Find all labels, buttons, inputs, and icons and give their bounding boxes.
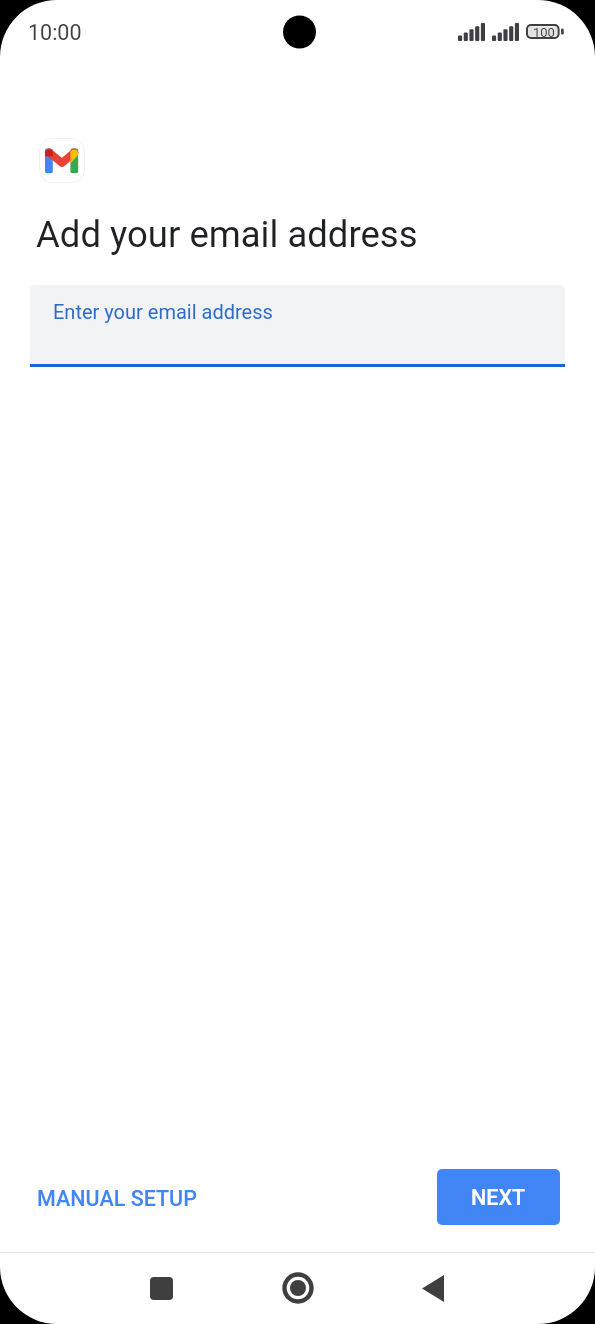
staticText: NEXT	[471, 1185, 526, 1210]
button[interactable]: MANUAL SETUP	[21, 1176, 213, 1221]
button[interactable]: Back	[383, 1253, 482, 1323]
staticText: Add your email address	[36, 213, 418, 256]
button[interactable]: NEXT	[437, 1169, 560, 1225]
button[interactable]: Recent apps	[112, 1253, 211, 1323]
button[interactable]: Home	[248, 1253, 347, 1323]
staticText: 10:00	[28, 20, 82, 45]
staticText: MANUAL SETUP	[37, 1186, 197, 1211]
staticText: Enter your email address	[53, 300, 273, 323]
button[interactable]: Enter your email address	[30, 285, 565, 364]
staticText: 100	[533, 25, 555, 40]
